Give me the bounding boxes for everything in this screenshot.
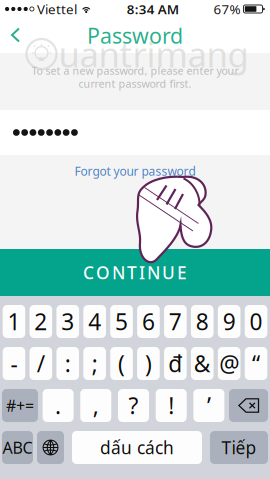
- staticText: 3: [61, 306, 74, 336]
- staticText: &: [194, 348, 211, 378]
- staticText: :: [65, 348, 71, 378]
- staticText: Forgot your password: [74, 163, 195, 179]
- button[interactable]: :: [56, 347, 79, 380]
- staticText: 9: [223, 306, 236, 336]
- staticText: uantrimang: [58, 31, 248, 77]
- button[interactable]: đ: [164, 347, 187, 380]
- staticText: /: [37, 348, 45, 378]
- button[interactable]: Tiếp: [210, 431, 268, 464]
- button[interactable]: 0: [245, 305, 267, 338]
- button[interactable]: dấu cách: [72, 431, 202, 464]
- button[interactable]: ;: [83, 347, 106, 380]
- button[interactable]: 1: [3, 305, 25, 338]
- staticText: ’: [207, 390, 211, 420]
- staticText: Viettel: [37, 0, 77, 18]
- button[interactable]: 5: [110, 305, 133, 338]
- button[interactable]: 3: [56, 305, 79, 338]
- staticText: 6: [142, 306, 155, 336]
- button[interactable]: (: [110, 347, 133, 380]
- staticText: @: [219, 348, 239, 378]
- button[interactable]: -: [3, 347, 25, 380]
- button[interactable]: @: [218, 347, 240, 380]
- button[interactable]: ’: [193, 389, 224, 422]
- staticText: dấu cách: [100, 436, 174, 459]
- button[interactable]: “: [245, 347, 267, 380]
- button[interactable]: #+=: [2, 389, 38, 422]
- staticText: current password first.: [78, 76, 191, 91]
- staticText: (: [118, 348, 125, 378]
- staticText: ?: [128, 390, 138, 420]
- button[interactable]: ABC: [2, 431, 33, 464]
- button[interactable]: Back: [0, 18, 32, 53]
- staticText: !: [168, 390, 174, 420]
- staticText: Password: [87, 21, 183, 50]
- button[interactable]: !: [156, 389, 187, 422]
- staticText: đ: [168, 348, 182, 378]
- staticText: 8: [196, 306, 209, 336]
- staticText: #+=: [6, 395, 34, 416]
- button[interactable]: 4: [83, 305, 106, 338]
- button[interactable]: 6: [137, 305, 160, 338]
- button[interactable]: &: [191, 347, 214, 380]
- button[interactable]: C O N T I N U E: [0, 249, 270, 296]
- staticText: ;: [92, 348, 98, 378]
- button[interactable]: 2: [30, 305, 52, 338]
- staticText: -: [10, 348, 17, 378]
- button[interactable]: ): [137, 347, 160, 380]
- staticText: ): [145, 348, 152, 378]
- staticText: 4: [88, 306, 101, 336]
- button[interactable]: 8: [191, 305, 214, 338]
- staticText: 67%: [213, 0, 240, 18]
- button[interactable]: ,: [80, 389, 111, 422]
- staticText: C O N T I N U E: [83, 261, 187, 284]
- staticText: .: [55, 390, 61, 420]
- button[interactable]: Next keyboard: [37, 431, 64, 464]
- staticText: 1: [7, 306, 20, 336]
- button[interactable]: .: [43, 389, 74, 422]
- button[interactable]: 9: [218, 305, 240, 338]
- staticText: “: [252, 348, 260, 378]
- button[interactable]: 7: [164, 305, 187, 338]
- staticText: 0: [250, 306, 263, 336]
- staticText: 2: [34, 306, 47, 336]
- staticText: To set a new password, please enter your: [31, 63, 238, 78]
- staticText: ABC: [2, 437, 32, 458]
- button[interactable]: /: [30, 347, 52, 380]
- button[interactable]: Forgot your password: [0, 155, 270, 187]
- staticText: 5: [115, 306, 128, 336]
- staticText: 7: [169, 306, 182, 336]
- staticText: Tiếp: [221, 436, 256, 459]
- button[interactable]: Delete: [229, 389, 268, 422]
- staticText: 8:34 AM: [127, 0, 179, 18]
- button[interactable]: ?: [118, 389, 149, 422]
- staticText: ,: [93, 390, 99, 420]
